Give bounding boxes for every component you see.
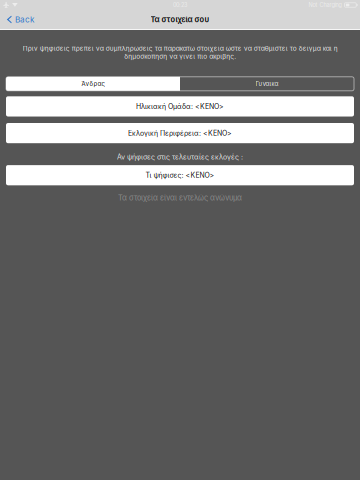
button[interactable]: Εκλογική Περιφέρεια: <KENO> [6,123,354,143]
staticText: Not Charging [308,2,341,8]
staticText: Ηλικιακή Ομάδα: <KENO> [136,102,224,111]
button[interactable]: Γυναίκα [180,77,354,91]
staticText: Άνδρας [81,80,104,87]
staticText: Αν ψήφισες στις τελευταίες εκλογές : [117,153,243,161]
staticText: Τα στοιχεία σου [150,15,209,24]
staticText: Εκλογική Περιφέρεια: <KENO> [128,129,232,137]
staticText: Πριν ψηφίσεις πρέπει να συμπληρώσεις τα … [22,44,337,60]
button[interactable]: Τι ψήφισες: <KENO> [6,165,354,185]
staticText: 00:23 [173,2,187,8]
staticText: Τι ψήφισες: <KENO> [145,171,214,179]
button[interactable]: Άνδρας [6,77,180,91]
staticText: Γυναίκα [255,80,278,87]
staticText: Τα στοιχεία είναι εντελώς ανώνυμα [118,193,242,202]
button[interactable]: Ηλικιακή Ομάδα: <KENO> [6,96,354,116]
staticText: Back [15,15,34,24]
button[interactable]: Back [0,10,40,29]
